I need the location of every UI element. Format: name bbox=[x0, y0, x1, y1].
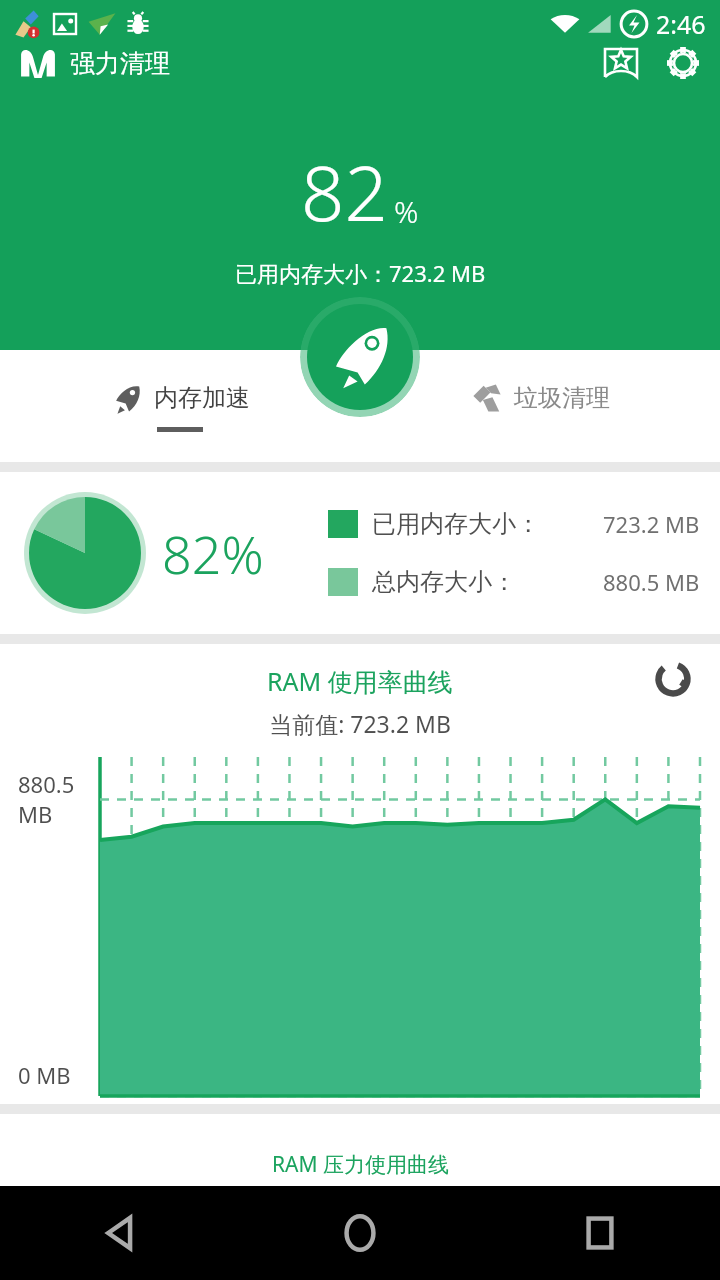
staticText: 当前值: 723.2 MB bbox=[0, 708, 720, 739]
button[interactable]: Boost bbox=[300, 297, 420, 417]
staticText: 82 bbox=[301, 140, 388, 244]
staticText: RAM 使用率曲线 bbox=[267, 664, 453, 698]
staticText: 总内存大小： bbox=[372, 567, 516, 597]
button[interactable]: Home bbox=[240, 1186, 480, 1280]
staticText: % bbox=[394, 191, 419, 232]
staticText: 0 MB bbox=[18, 1060, 71, 1090]
staticText: 723.2 MB bbox=[603, 509, 700, 539]
button[interactable]: Recents bbox=[480, 1186, 720, 1280]
staticText: 已用内存大小： bbox=[372, 509, 540, 539]
staticText: RAM 压力使用曲线 bbox=[272, 1150, 449, 1179]
staticText: 880.5 MB bbox=[18, 769, 75, 829]
staticText: 强力清理 bbox=[70, 48, 170, 78]
staticText: 内存加速 bbox=[154, 383, 250, 413]
button[interactable]: 垃圾清理 bbox=[360, 350, 720, 462]
button[interactable]: 内存加速 bbox=[0, 350, 360, 462]
staticText: 2:46 bbox=[656, 7, 706, 41]
button[interactable]: Back bbox=[0, 1186, 240, 1280]
button[interactable]: Refresh bbox=[648, 654, 698, 704]
staticText: 82% bbox=[162, 518, 264, 589]
staticText: 垃圾清理 bbox=[514, 383, 610, 413]
button[interactable]: Settings bbox=[652, 48, 714, 78]
staticText: 880.5 MB bbox=[603, 567, 700, 597]
button[interactable]: Bookmark bbox=[590, 48, 652, 78]
staticText: 已用内存大小：723.2 MB bbox=[235, 258, 486, 288]
